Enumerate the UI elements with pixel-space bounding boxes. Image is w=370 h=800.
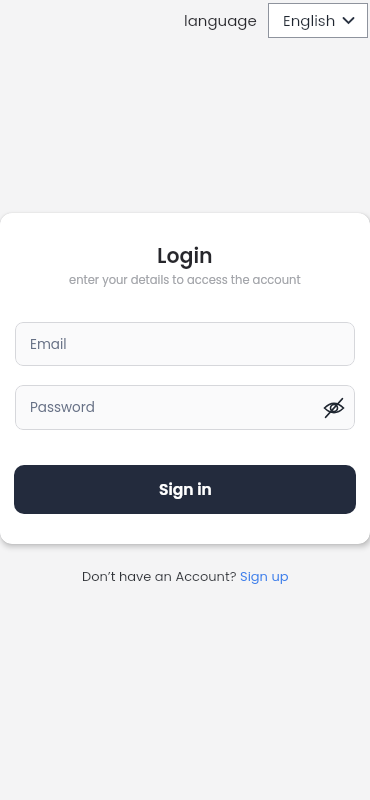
staticText: language xyxy=(184,10,257,31)
staticText: Password xyxy=(30,398,95,417)
button[interactable]: Don’t have an Account? xyxy=(82,567,289,585)
staticText: enter your details to access the account xyxy=(69,272,301,288)
staticText: Sign up xyxy=(240,567,289,585)
button[interactable]: Password xyxy=(15,385,355,430)
button[interactable]: Email xyxy=(15,322,355,366)
staticText: Don’t have an Account? xyxy=(82,567,240,585)
button[interactable]: Sign in xyxy=(14,465,356,514)
staticText: Login xyxy=(157,241,213,270)
staticText: Email xyxy=(30,335,67,354)
button[interactable]: English xyxy=(268,3,368,38)
staticText: English xyxy=(283,10,336,31)
staticText: Sign in xyxy=(159,479,212,501)
